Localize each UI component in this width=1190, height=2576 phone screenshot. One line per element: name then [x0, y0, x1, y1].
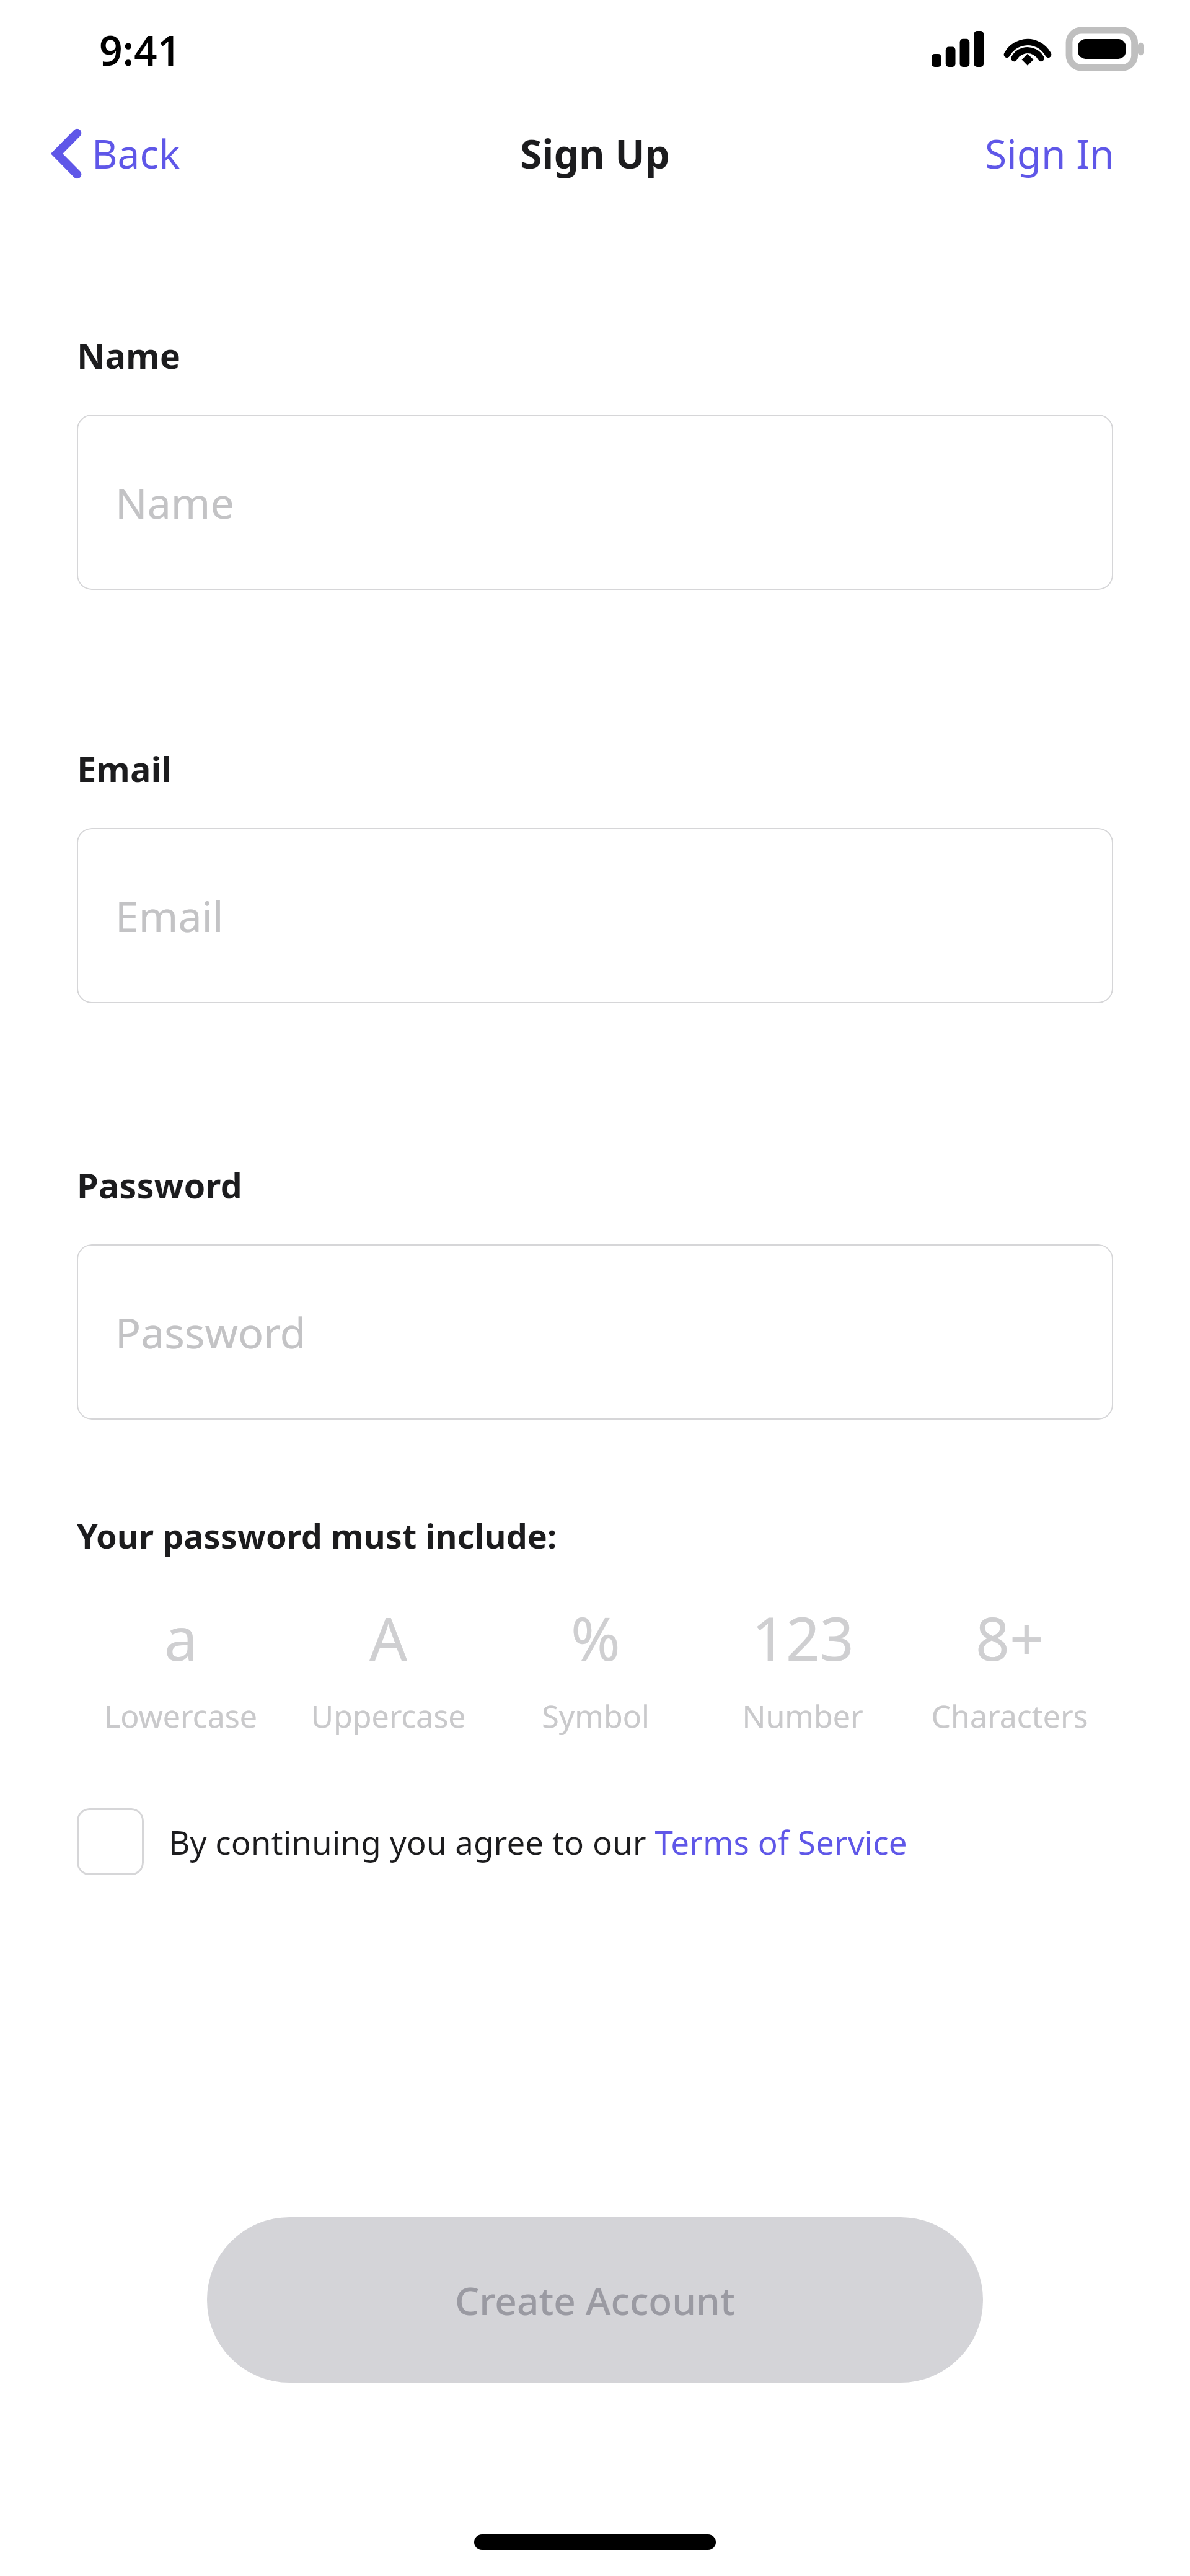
staticText: By continuing you agree to our Terms of …	[169, 1819, 907, 1864]
staticText: Lowercase	[104, 1695, 257, 1737]
button[interactable]: 8+	[906, 1591, 1113, 1737]
button[interactable]: a	[77, 1591, 284, 1737]
button[interactable]: Create Account	[207, 2217, 983, 2383]
staticText: Email	[77, 745, 172, 792]
staticText: Symbol	[542, 1695, 650, 1737]
button[interactable]: 123	[699, 1591, 906, 1737]
button[interactable]: Agree to Terms of Service	[77, 1808, 1113, 1875]
button[interactable]: Back	[45, 118, 188, 189]
staticText: Name	[115, 473, 234, 531]
staticText: Your password must include:	[77, 1513, 557, 1558]
staticText: Email	[115, 887, 224, 944]
staticText: 123	[752, 1597, 854, 1678]
staticText: 8+	[976, 1597, 1044, 1678]
button[interactable]: Email	[77, 828, 1113, 1003]
staticText: Back	[92, 126, 180, 180]
staticText: Uppercase	[311, 1695, 466, 1737]
staticText: Number	[742, 1695, 863, 1737]
staticText: Name	[77, 332, 181, 379]
staticText: Password	[77, 1161, 242, 1208]
button[interactable]: Sign In	[977, 118, 1122, 189]
staticText: 9:41	[99, 22, 181, 77]
staticText: %	[571, 1597, 620, 1678]
staticText: a	[164, 1597, 198, 1678]
other: Agree to Terms of Service	[77, 1808, 144, 1875]
button[interactable]: A	[284, 1591, 492, 1737]
button[interactable]: Name	[77, 415, 1113, 590]
button[interactable]: %	[492, 1591, 699, 1737]
staticText: Sign In	[985, 126, 1114, 180]
staticText: Create Account	[455, 2274, 735, 2326]
button[interactable]: Password	[77, 1244, 1113, 1420]
staticText: A	[369, 1597, 408, 1678]
staticText: Password	[115, 1303, 306, 1361]
staticText: Characters	[931, 1695, 1088, 1737]
staticText: Sign Up	[520, 126, 670, 180]
